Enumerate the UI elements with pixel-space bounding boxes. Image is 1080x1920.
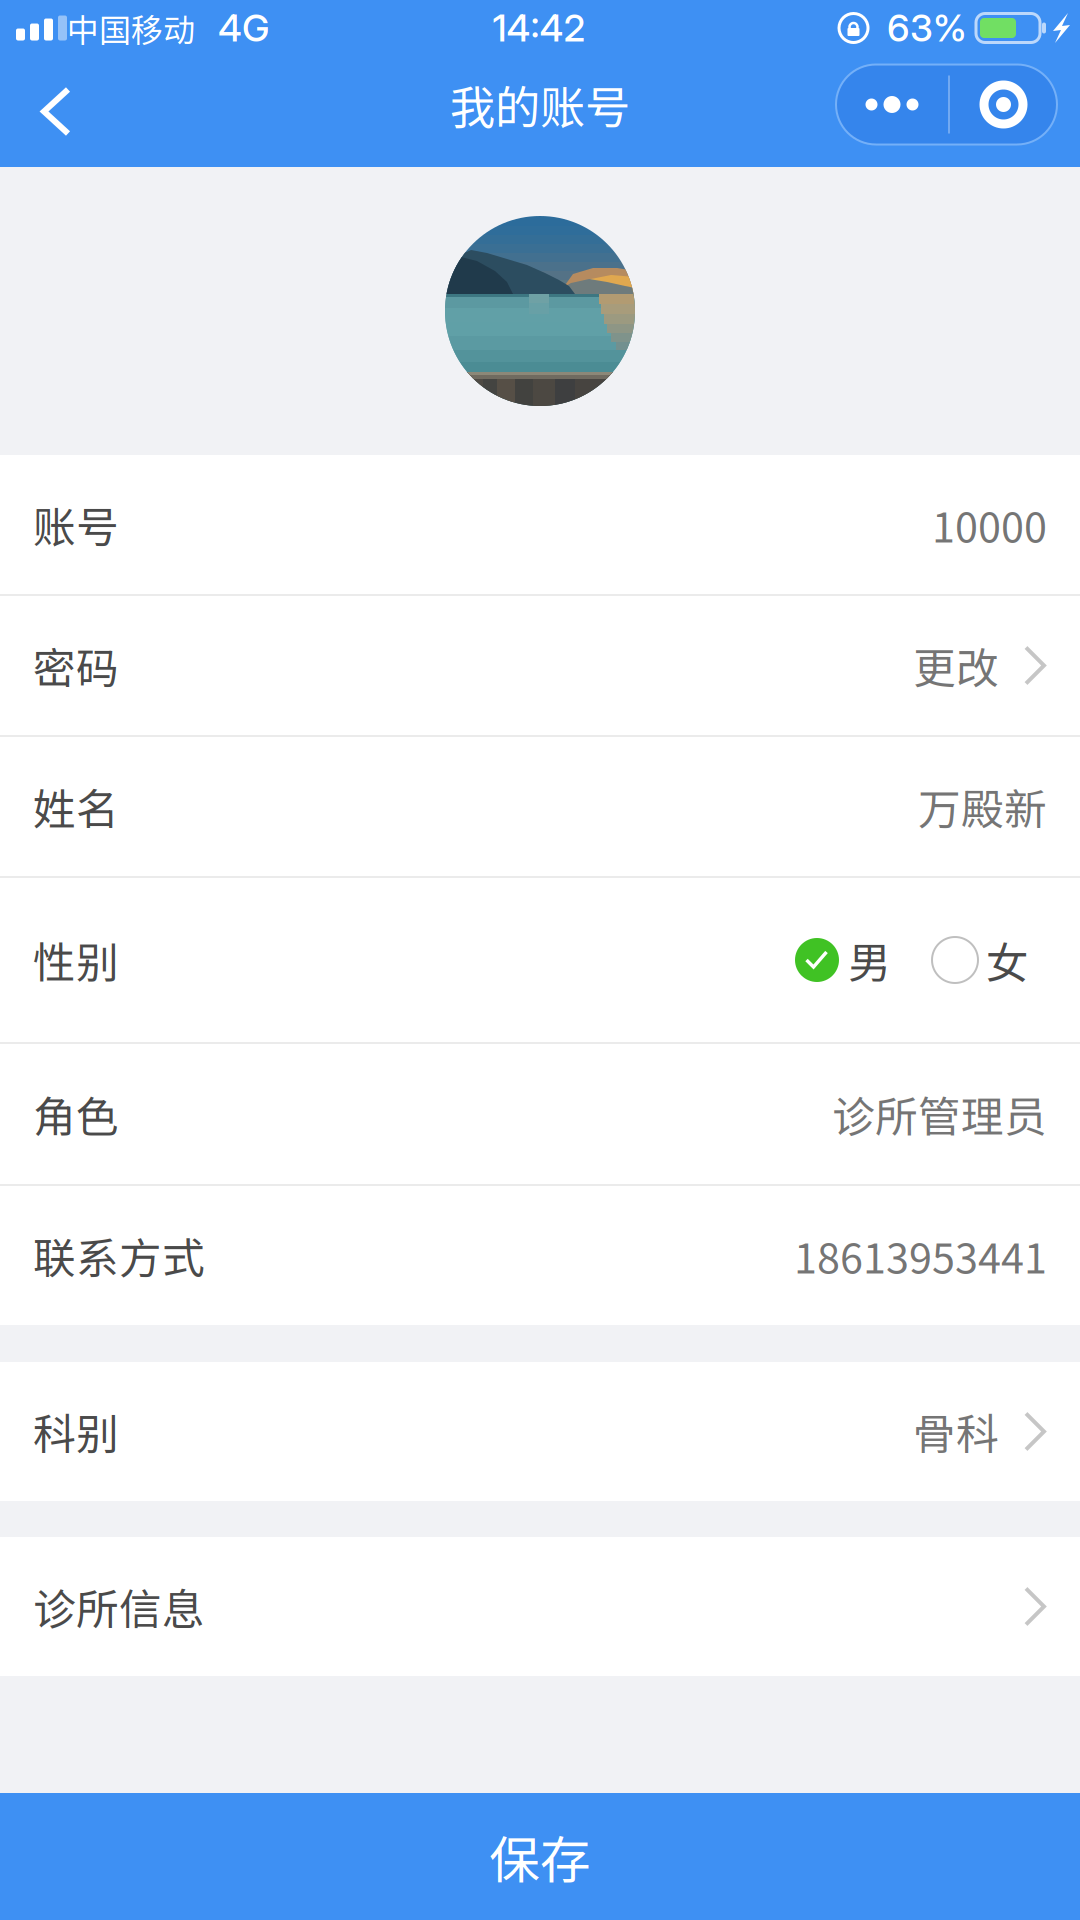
staticText: 男 <box>848 929 891 991</box>
staticText: 14:42 <box>492 5 585 51</box>
button[interactable]: 头像 <box>445 216 635 406</box>
staticText: 10000 <box>932 495 1047 554</box>
button[interactable]: 女 <box>891 929 1029 991</box>
button[interactable]: 角色 <box>0 1044 1080 1186</box>
staticText: 骨科 <box>913 1401 999 1462</box>
button[interactable]: 姓名 <box>0 737 1080 878</box>
staticText: 女 <box>986 929 1029 991</box>
staticText: 密码 <box>33 635 119 696</box>
staticText: 万殿新 <box>918 776 1047 837</box>
staticText: 保存 <box>489 1820 591 1893</box>
staticText: 角色 <box>33 1083 119 1145</box>
button[interactable]: 关闭 <box>950 64 1057 144</box>
staticText: 性别 <box>33 929 119 991</box>
button[interactable]: 科别 <box>0 1362 1080 1501</box>
button[interactable]: 密码 <box>0 596 1080 737</box>
staticText: 账号 <box>33 494 119 555</box>
staticText: 姓名 <box>33 776 119 837</box>
staticText: 联系方式 <box>33 1225 205 1286</box>
staticText: 更改 <box>913 635 999 696</box>
button[interactable]: 性别 <box>0 878 1080 1044</box>
staticText: 中国移动 <box>67 5 195 51</box>
staticText: 4G <box>218 5 269 51</box>
button[interactable]: 诊所信息 <box>0 1537 1080 1676</box>
button[interactable]: 更多 <box>836 64 948 144</box>
button[interactable]: 账号 <box>0 455 1080 596</box>
staticText: 科别 <box>33 1401 119 1462</box>
staticText: 63% <box>887 5 967 51</box>
staticText: 诊所信息 <box>33 1576 205 1637</box>
button[interactable]: 保存 <box>0 1793 1080 1920</box>
button[interactable]: 男 <box>795 929 891 991</box>
staticText: 我的账号 <box>450 72 630 137</box>
staticText: 诊所管理员 <box>832 1083 1047 1145</box>
staticText: 18613953441 <box>794 1226 1047 1285</box>
button[interactable]: 联系方式 <box>0 1186 1080 1325</box>
button[interactable]: 返回 <box>0 66 98 156</box>
